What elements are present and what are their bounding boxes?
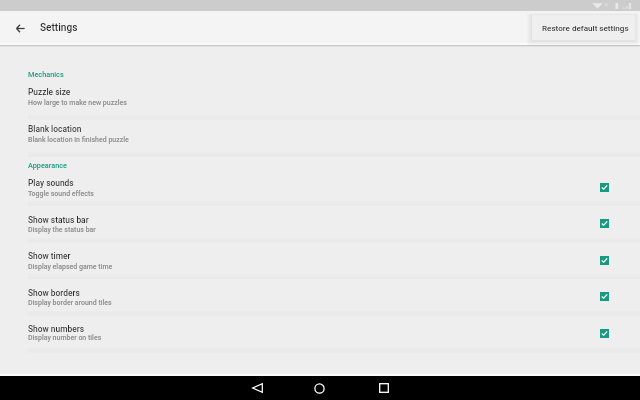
button[interactable]: Toggle setting [592, 284, 616, 308]
button[interactable]: Toggle setting [592, 175, 616, 199]
staticText: Play sounds [28, 178, 74, 188]
button[interactable]: Back [245, 376, 269, 400]
button[interactable] [0, 204, 640, 241]
button[interactable] [0, 172, 640, 204]
staticText: Blank location in finished puzzle [28, 136, 129, 144]
button[interactable]: Recent apps [372, 376, 396, 400]
button[interactable]: Navigate up [8, 16, 32, 40]
button[interactable]: Toggle setting [592, 211, 616, 235]
staticText: Appearance [28, 161, 67, 170]
button[interactable] [0, 118, 640, 155]
staticText: Restore default settings [542, 23, 629, 32]
staticText: How large to make new puzzles [28, 99, 127, 107]
button[interactable]: Toggle setting [592, 248, 616, 272]
button[interactable]: Restore default settings [532, 15, 635, 40]
staticText: Display elapsed game time [28, 263, 113, 271]
staticText: Show timer [28, 251, 71, 261]
staticText: Show numbers [28, 324, 84, 334]
staticText: Puzzle size [28, 87, 71, 97]
staticText: Blank location [28, 124, 82, 134]
button[interactable] [0, 314, 640, 351]
staticText: Mechanics [28, 70, 64, 79]
button[interactable]: Home [307, 376, 331, 400]
button[interactable]: Toggle setting [592, 321, 616, 345]
button[interactable] [0, 80, 640, 117]
staticText: Display border around tiles [28, 299, 112, 307]
staticText: Settings [40, 22, 78, 34]
staticText: Show borders [28, 288, 80, 298]
staticText: Toggle sound effects [28, 190, 94, 198]
button[interactable] [0, 241, 640, 278]
staticText: Display number on tiles [28, 334, 102, 342]
staticText: Display the status bar [28, 226, 96, 234]
staticText: Show status bar [28, 215, 89, 225]
button[interactable] [0, 277, 640, 314]
